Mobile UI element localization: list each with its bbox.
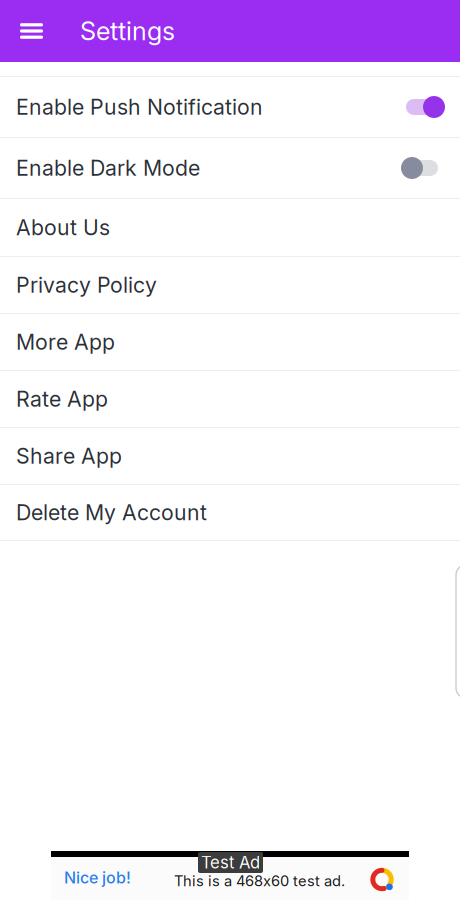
button[interactable]: Menu — [0, 0, 63, 62]
staticText: Share App — [16, 443, 122, 469]
staticText: Nice job! — [64, 868, 131, 887]
staticText: Test Ad — [201, 852, 260, 873]
button[interactable]: Rate App — [0, 371, 460, 428]
staticText: About Us — [16, 215, 110, 240]
button[interactable]: Enable Push Notification — [0, 77, 460, 138]
staticText: Rate App — [16, 386, 108, 412]
staticText: Settings — [80, 16, 175, 46]
staticText: Enable Dark Mode — [16, 155, 200, 181]
staticText: Delete My Account — [16, 500, 207, 525]
staticText: Enable Push Notification — [16, 94, 263, 120]
staticText: Privacy Policy — [16, 272, 157, 298]
button[interactable]: Enable Dark Mode — [0, 138, 460, 199]
staticText: More App — [16, 329, 115, 355]
button[interactable]: About Us — [0, 199, 460, 257]
button[interactable]: Share App — [0, 428, 460, 485]
button[interactable]: Delete My Account — [0, 485, 460, 541]
staticText: This is a 468x60 test ad. — [174, 872, 345, 890]
button[interactable]: Privacy Policy — [0, 257, 460, 314]
button[interactable]: More App — [0, 314, 460, 371]
